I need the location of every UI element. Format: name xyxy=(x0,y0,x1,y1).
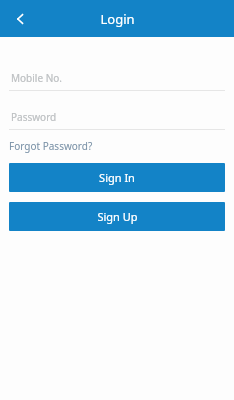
button[interactable]: Sign In xyxy=(9,163,225,192)
button[interactable]: Mobile No. xyxy=(9,68,225,88)
staticText: Forgot Password? xyxy=(9,139,93,153)
staticText: Sign In xyxy=(99,170,135,185)
button[interactable]: Forgot Password? xyxy=(9,138,93,154)
staticText: Mobile No. xyxy=(11,71,62,85)
button[interactable]: Back xyxy=(6,4,36,34)
button[interactable]: Sign Up xyxy=(9,202,225,231)
staticText: Password xyxy=(11,110,57,124)
button[interactable]: Password xyxy=(9,107,225,127)
staticText: Sign Up xyxy=(97,209,138,224)
staticText: Login xyxy=(100,10,135,28)
